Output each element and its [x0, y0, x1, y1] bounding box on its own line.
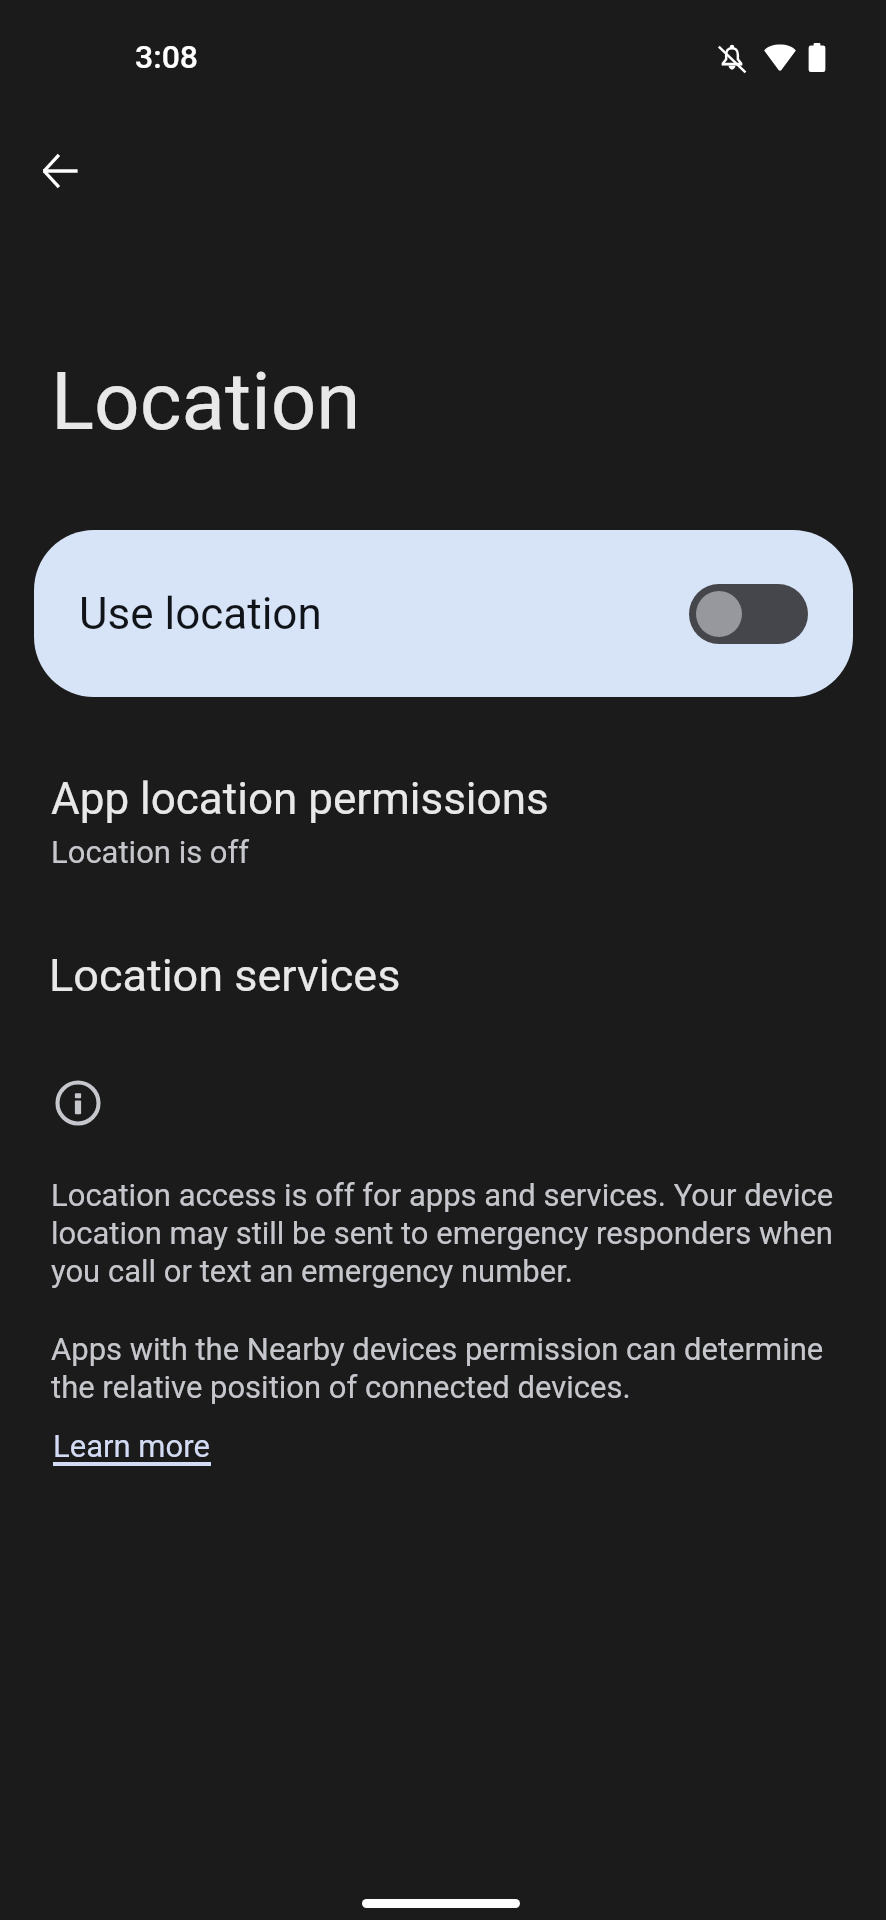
- button[interactable]: App location permissions: [0, 759, 886, 894]
- other: Notifications silenced: [717, 43, 747, 73]
- staticText: Location access is off for apps and serv…: [51, 1176, 841, 1290]
- staticText: Use location: [79, 588, 322, 640]
- staticText: Learn more: [53, 1428, 210, 1464]
- staticText: Location: [51, 355, 361, 449]
- button[interactable]: Location services: [0, 935, 886, 1015]
- staticText: Location is off: [51, 834, 250, 870]
- staticText: App location permissions: [51, 773, 549, 825]
- other: Information: [54, 1079, 102, 1127]
- other: Battery full: [806, 43, 828, 72]
- button[interactable]: Learn more: [53, 1428, 211, 1464]
- staticText: Location services: [49, 949, 401, 1002]
- button[interactable]: Back: [24, 135, 96, 207]
- staticText: Apps with the Nearby devices permission …: [51, 1330, 841, 1406]
- other: Wi-Fi: [764, 41, 796, 71]
- staticText: 3:08: [135, 38, 198, 76]
- button[interactable]: Use location: [34, 530, 853, 697]
